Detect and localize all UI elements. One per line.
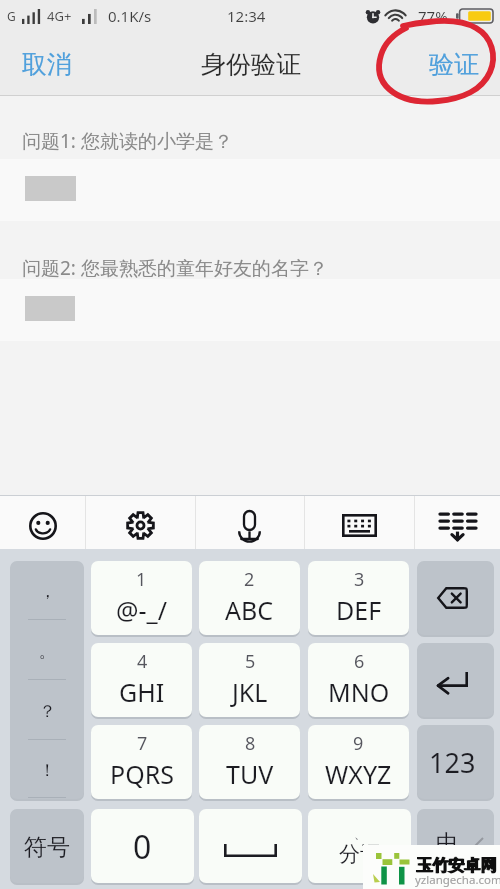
staticText: 5: [245, 649, 256, 674]
staticText: 1: [136, 567, 147, 592]
staticText: 123: [429, 744, 476, 781]
staticText: 77%: [418, 6, 448, 26]
staticText: 。: [39, 641, 56, 662]
button[interactable]: 3: [308, 561, 409, 635]
button[interactable]: [0, 159, 500, 221]
staticText: @-_/: [116, 593, 167, 627]
staticText: 4G+: [47, 7, 72, 25]
button[interactable]: Keyboard layout: [304, 496, 414, 549]
button[interactable]: Backspace: [417, 561, 494, 635]
staticText: G: [7, 8, 16, 24]
staticText: ？: [39, 701, 56, 722]
staticText: 身份验证: [201, 49, 301, 80]
button[interactable]: 取消: [0, 37, 92, 92]
staticText: 0: [133, 825, 152, 869]
staticText: 12:34: [227, 6, 266, 26]
staticText: 分词: [339, 841, 381, 867]
button[interactable]: 1: [91, 561, 192, 635]
button[interactable]: 5: [199, 643, 300, 717]
staticText: 3: [354, 567, 365, 592]
staticText: PQRS: [110, 757, 174, 791]
staticText: MNO: [328, 675, 390, 709]
button[interactable]: [0, 279, 500, 341]
button[interactable]: 8: [199, 725, 300, 799]
button[interactable]: 2: [199, 561, 300, 635]
staticText: WXYZ: [325, 757, 392, 791]
button[interactable]: 0: [91, 809, 194, 883]
button[interactable]: Enter: [417, 643, 494, 717]
staticText: ！: [39, 760, 56, 781]
staticText: 2: [244, 567, 255, 592]
staticText: ，: [39, 581, 56, 602]
button[interactable]: 中: [417, 809, 494, 883]
button[interactable]: 验证: [409, 37, 500, 92]
button[interactable]: Voice input: [195, 496, 304, 549]
staticText: 4: [137, 649, 148, 674]
staticText: 0.1K/s: [108, 6, 152, 26]
staticText: GHI: [119, 675, 165, 709]
staticText: 取消: [22, 49, 72, 80]
staticText: yzlangecha.com: [415, 872, 500, 888]
staticText: 中: [436, 829, 458, 857]
staticText: 9: [353, 731, 364, 756]
staticText: 问题1: 您就读的小学是？: [22, 128, 233, 154]
staticText: 、: [354, 826, 366, 841]
staticText: 7: [137, 731, 148, 756]
staticText: 玉竹安卓网: [416, 856, 496, 876]
button[interactable]: Hide keyboard: [414, 496, 500, 549]
button[interactable]: Space: [199, 809, 302, 883]
staticText: TUV: [226, 757, 274, 791]
staticText: 8: [245, 731, 256, 756]
button[interactable]: 符号: [10, 809, 84, 883]
staticText: 6: [354, 649, 365, 674]
button[interactable]: 9: [308, 725, 409, 799]
button[interactable]: 7: [91, 725, 192, 799]
staticText: JKL: [232, 675, 268, 709]
staticText: ABC: [225, 593, 274, 627]
staticText: 玉竹安卓网: [417, 856, 497, 876]
staticText: DEF: [336, 593, 382, 627]
staticText: 问题2: 您最熟悉的童年好友的名字？: [22, 255, 328, 281]
staticText: 验证: [429, 49, 479, 80]
button[interactable]: 6: [308, 643, 409, 717]
button[interactable]: 123: [417, 725, 494, 799]
button[interactable]: 4: [91, 643, 192, 717]
button[interactable]: 、: [308, 809, 411, 883]
button[interactable]: Settings: [85, 496, 195, 549]
button[interactable]: Emoji: [0, 496, 85, 549]
button[interactable]: ，: [10, 561, 84, 799]
staticText: 符号: [24, 833, 70, 862]
